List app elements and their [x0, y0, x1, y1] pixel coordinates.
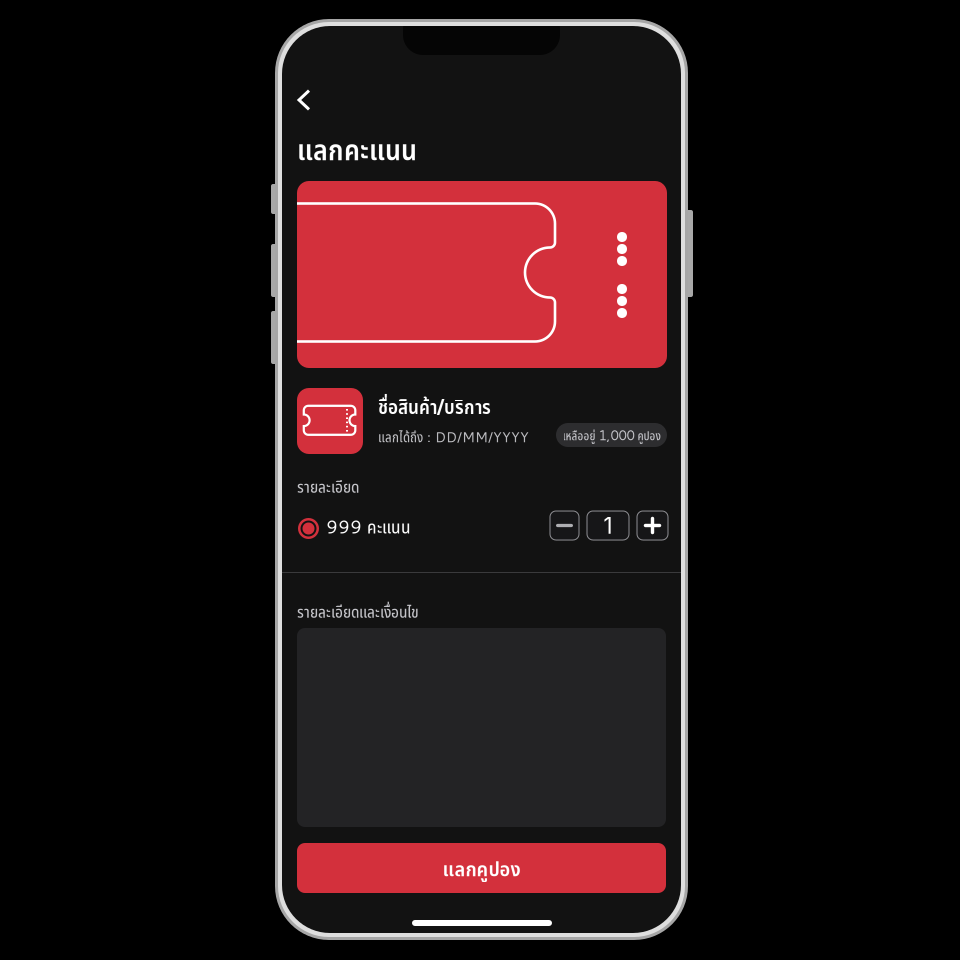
staticText: รายละเอียดและเงื่อนไข — [297, 600, 419, 623]
staticText: รายละเอียด — [297, 475, 359, 498]
staticText: แลกคะแนน — [297, 129, 417, 169]
staticText: ชื่อสินค้า/บริการ — [378, 392, 491, 420]
button[interactable]: Back — [282, 78, 326, 122]
button[interactable]: Increase quantity — [637, 511, 668, 540]
button[interactable]: Decrease quantity — [550, 511, 579, 540]
staticText: แลกได้ถึง : DD/MM/YYYY — [378, 427, 529, 447]
staticText: เหลืออยู่ 1,000 คูปอง — [562, 426, 660, 444]
staticText: 999 คะแนน — [326, 513, 411, 539]
button[interactable]: ชื่อสินค้า/บริการ — [297, 388, 667, 454]
button[interactable]: แลกคูปอง — [297, 843, 666, 893]
staticText: แลกคูปอง — [442, 853, 520, 883]
staticText: 1 — [603, 512, 612, 539]
